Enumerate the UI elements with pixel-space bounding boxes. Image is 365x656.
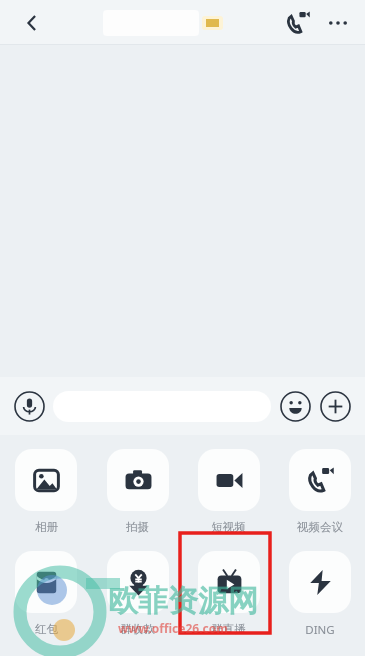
staticText: www.office26.com [118,620,228,636]
staticText: DING [305,622,335,638]
staticText: 短视频 [211,520,246,534]
button[interactable]: Back [12,3,52,43]
staticText: 欧菲资源网 [108,582,258,620]
button[interactable]: 红包 [0,551,92,636]
button[interactable]: 相册 [0,449,92,534]
staticText: 群收款 [120,622,155,636]
staticText: 相册 [35,520,58,534]
button[interactable]: 群收款 [92,551,183,636]
button[interactable]: Voice message [14,391,45,422]
button[interactable]: DING [274,551,365,638]
button[interactable]: Emoji [280,391,311,422]
button[interactable]: 视频会议 [274,449,365,534]
button[interactable]: More options [319,4,357,42]
staticText: 红包 [35,622,58,636]
staticText: 群直播 [211,622,246,636]
staticText: 拍摄 [126,520,149,534]
button[interactable]: More [320,391,351,422]
button[interactable]: 短视频 [183,449,274,534]
button[interactable]: Video call [279,4,317,42]
button[interactable]: 群直播 [183,551,274,636]
button[interactable]: 拍摄 [92,449,183,534]
staticText: 视频会议 [297,520,343,534]
